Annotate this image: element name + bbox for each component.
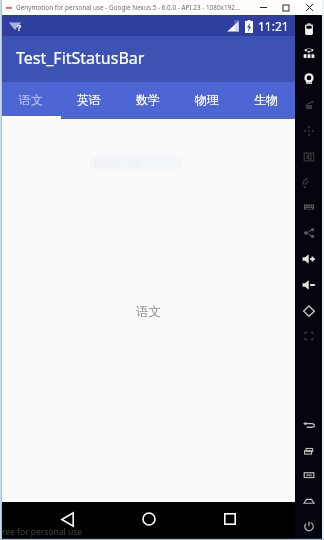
button[interactable]: 数学 xyxy=(118,82,177,119)
button[interactable]: 物理 xyxy=(177,82,236,119)
button[interactable]: Identifiers xyxy=(295,146,322,168)
button[interactable]: Camera xyxy=(295,68,322,90)
staticText: 11:21 xyxy=(258,18,289,34)
button[interactable]: Power xyxy=(295,515,322,537)
button[interactable]: Battery xyxy=(295,18,322,40)
staticText: 生物 xyxy=(254,92,278,107)
button[interactable]: Recent apps xyxy=(295,440,322,462)
staticText: 语文 xyxy=(19,92,43,107)
button[interactable]: Close xyxy=(299,0,319,15)
staticText: ? xyxy=(17,21,22,33)
staticText: Test_FitStatusBar xyxy=(16,47,145,69)
staticText: 物理 xyxy=(195,92,219,107)
button[interactable]: 语文 xyxy=(2,82,60,119)
button[interactable]: Keyboard xyxy=(295,196,322,218)
button[interactable]: Home xyxy=(295,490,322,512)
staticText: Genymotion for personal use - Google Nex… xyxy=(16,3,240,12)
button[interactable]: Menu xyxy=(295,464,322,486)
staticText: 英语 xyxy=(77,92,101,107)
staticText: 语文 xyxy=(136,304,161,320)
button[interactable]: Rotate screen xyxy=(295,300,322,322)
button[interactable]: Network xyxy=(295,172,322,194)
staticText: free for personal use xyxy=(0,526,83,538)
button[interactable]: Back xyxy=(295,414,322,436)
button[interactable]: 生物 xyxy=(236,82,295,119)
button[interactable]: Share xyxy=(295,222,322,244)
button[interactable]: Maximize xyxy=(276,0,296,15)
button[interactable]: Volume down xyxy=(295,274,322,296)
button[interactable]: Minimize xyxy=(253,0,273,15)
button[interactable]: Disk IO xyxy=(295,94,322,116)
button[interactable]: Volume up xyxy=(295,248,322,270)
button[interactable]: D-pad xyxy=(295,120,322,142)
button[interactable]: Recents xyxy=(213,502,247,536)
button[interactable]: Home xyxy=(132,502,166,536)
button[interactable]: 英语 xyxy=(60,82,118,119)
button[interactable]: Back xyxy=(50,502,84,536)
button[interactable]: More options xyxy=(295,325,322,347)
staticText: 数学 xyxy=(136,92,160,107)
button[interactable]: GPS xyxy=(295,43,322,65)
